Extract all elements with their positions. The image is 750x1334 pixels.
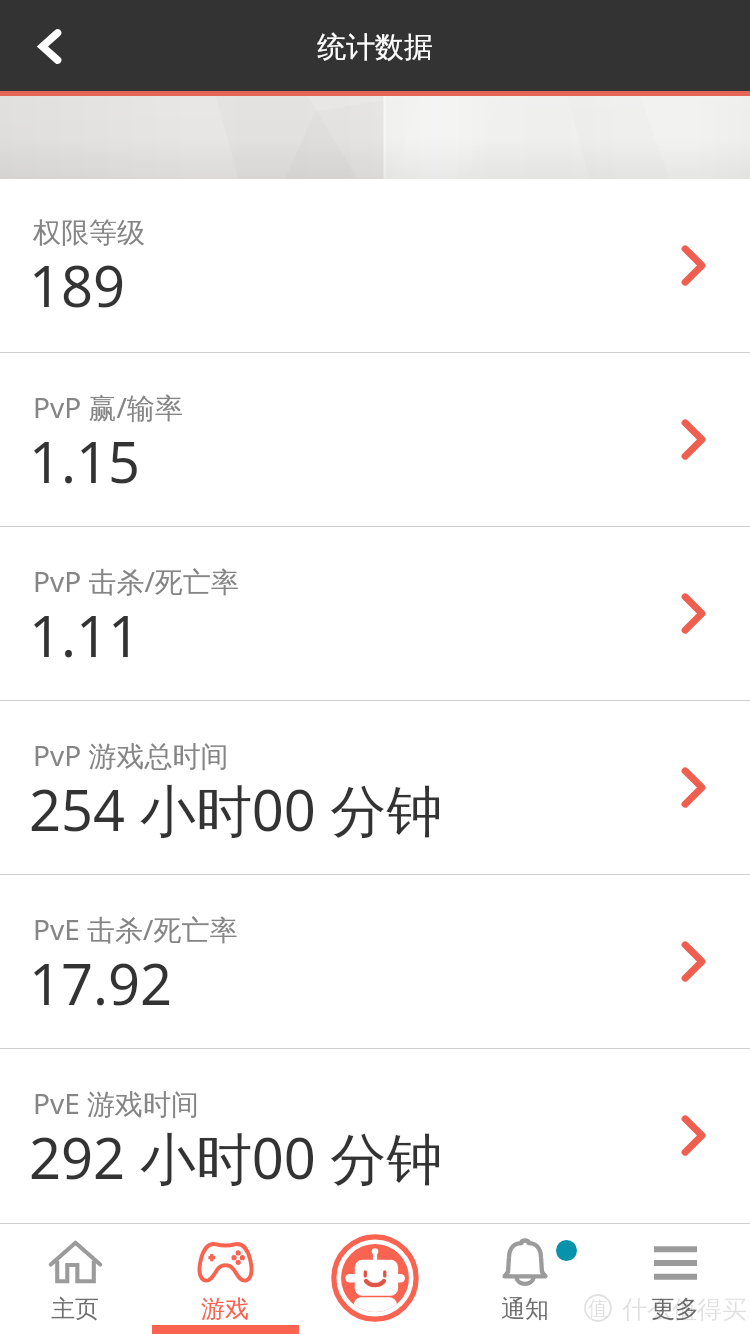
staticText: 254 小时00 分钟 [29, 771, 443, 847]
button[interactable]: PvE 游戏时间 [0, 1049, 750, 1222]
staticText: PvP 游戏总时间 [33, 736, 229, 774]
button[interactable]: 更多 [600, 1223, 750, 1334]
staticText: 17.92 [29, 945, 173, 1021]
staticText: 值 [588, 1296, 608, 1321]
staticText: 权限等级 [33, 215, 145, 250]
button[interactable]: PvP 击杀/死亡率 [0, 527, 750, 700]
staticText: PvE 击杀/死亡率 [33, 910, 238, 948]
button[interactable]: Back [0, 0, 100, 91]
staticText: 主页 [51, 1294, 99, 1324]
staticText: PvP 击杀/死亡率 [33, 562, 239, 600]
staticText: PvE 游戏时间 [33, 1084, 200, 1122]
button[interactable]: 主页 [0, 1223, 150, 1334]
staticText: 1.11 [29, 597, 141, 673]
staticText: PvP 赢/输率 [33, 388, 183, 426]
staticText: 1.15 [29, 423, 141, 499]
staticText: 189 [29, 247, 126, 323]
button[interactable]: Assistant [331, 1234, 419, 1322]
staticText: 统计数据 [317, 29, 433, 66]
button[interactable]: 通知 [450, 1223, 600, 1334]
staticText: 更多 [651, 1294, 699, 1324]
button[interactable]: PvE 击杀/死亡率 [0, 875, 750, 1048]
button[interactable]: PvP 赢/输率 [0, 353, 750, 526]
staticText: 什么值得买 [622, 1294, 747, 1325]
staticText: 通知 [501, 1294, 549, 1324]
button[interactable]: 权限等级 [0, 179, 750, 352]
staticText: 292 小时00 分钟 [29, 1119, 443, 1195]
button[interactable]: PvP 游戏总时间 [0, 701, 750, 874]
staticText: 游戏 [201, 1294, 249, 1324]
button[interactable]: 游戏 [150, 1223, 300, 1334]
